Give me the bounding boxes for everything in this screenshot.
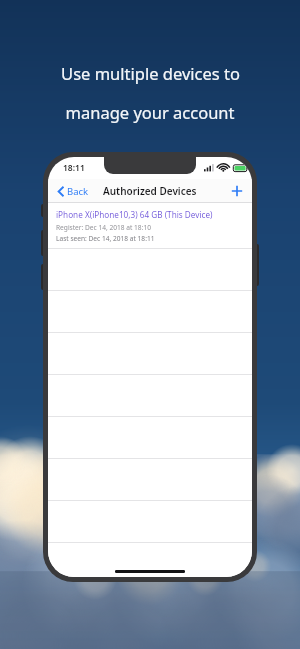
staticText: Register: Dec 14, 2018 at 18:10 <box>56 223 151 232</box>
staticText: 18:11 <box>63 162 85 174</box>
staticText: Authorized Devices <box>103 184 197 198</box>
staticText: iPhone X(iPhone10,3) 64 GB (This Device) <box>56 209 213 220</box>
button[interactable] <box>48 543 252 561</box>
staticText: Last seen: Dec 14, 2018 at 18:11 <box>56 234 155 243</box>
staticText: Use multiple devices to <box>61 62 240 84</box>
button[interactable]: Add device <box>228 182 246 200</box>
button[interactable]: Back <box>55 182 92 201</box>
button[interactable]: iPhone X(iPhone10,3) 64 GB (This Device) <box>48 203 252 248</box>
staticText: Back <box>67 185 89 198</box>
staticText: manage your account <box>65 101 235 123</box>
